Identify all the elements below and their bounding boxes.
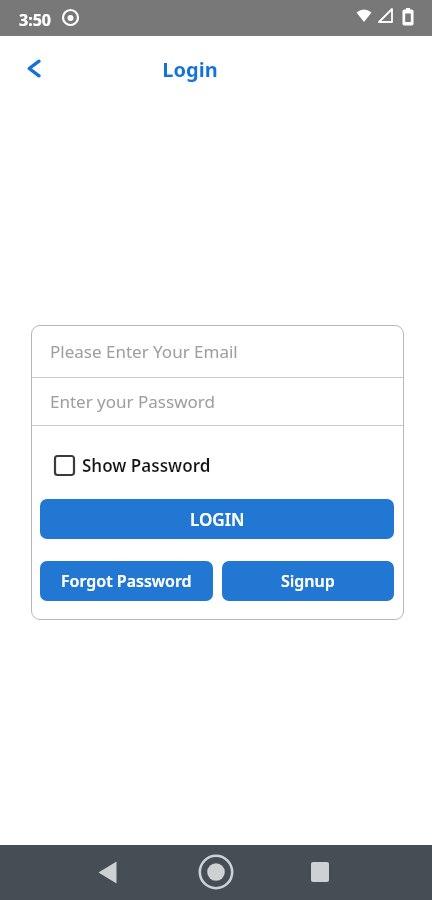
staticText: Please Enter Your Email xyxy=(50,340,238,363)
button[interactable]: Show Password xyxy=(54,449,211,481)
staticText: Signup xyxy=(281,570,335,592)
button[interactable]: Please Enter Your Email xyxy=(31,325,404,377)
staticText: Show Password xyxy=(82,454,211,477)
staticText: Forgot Password xyxy=(61,570,192,592)
button[interactable]: Enter your Password xyxy=(31,378,404,425)
staticText: LOGIN xyxy=(190,508,245,531)
button[interactable] xyxy=(195,851,237,893)
staticText: Login xyxy=(130,56,250,83)
staticText: 3:50 xyxy=(19,9,51,31)
staticText: Enter your Password xyxy=(50,390,215,413)
button[interactable] xyxy=(86,851,128,893)
button[interactable]: Signup xyxy=(222,561,394,601)
button[interactable]: LOGIN xyxy=(40,499,394,539)
button[interactable] xyxy=(299,851,341,893)
button[interactable] xyxy=(16,50,52,86)
button[interactable]: Forgot Password xyxy=(40,561,213,601)
